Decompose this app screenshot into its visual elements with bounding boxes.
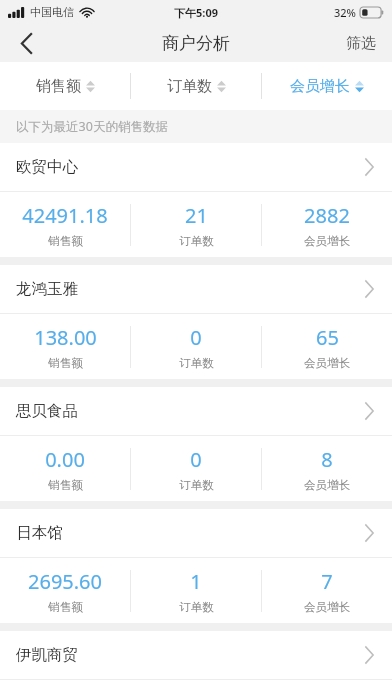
button[interactable]: Back [0,24,52,62]
staticText: 7 [321,568,333,595]
staticText: 商户分析 [162,33,230,54]
staticText: 会员增长 [304,234,350,248]
staticText: 会员增长 [304,478,350,492]
staticText: 以下为最近30天的销售数据 [16,118,168,135]
staticText: 0 [190,324,202,351]
staticText: 下午5:09 [174,5,218,20]
staticText: 会员增长 [290,77,350,96]
staticText: 思贝食品 [16,401,78,421]
staticText: 销售额 [48,600,83,614]
staticText: 销售额 [48,234,83,248]
staticText: 8 [321,446,333,473]
staticText: 欧贸中心 [16,157,78,177]
button[interactable]: 日本馆 [0,509,392,623]
button[interactable]: 欧贸中心 [0,143,392,257]
button[interactable]: 龙鸿玉雅 [0,265,392,379]
staticText: 2882 [304,202,350,229]
staticText: 会员增长 [304,356,350,370]
staticText: 中国电信 [30,5,74,19]
staticText: 订单数 [179,478,214,492]
staticText: 0.00 [45,446,85,473]
staticText: 订单数 [179,600,214,614]
staticText: 龙鸿玉雅 [16,279,78,299]
button[interactable]: 筛选 [330,24,392,62]
staticText: 42491.18 [22,202,108,229]
staticText: 0 [190,446,202,473]
staticText: 订单数 [179,234,214,248]
button[interactable]: 会员增长 [262,62,392,110]
staticText: 订单数 [167,77,212,96]
staticText: 65 [316,324,339,351]
staticText: 138.00 [34,324,97,351]
button[interactable]: 销售额 [0,62,130,110]
staticText: 会员增长 [304,600,350,614]
staticText: 伊凯商贸 [16,645,78,665]
staticText: 21 [185,202,208,229]
staticText: 销售额 [36,77,81,96]
staticText: 日本馆 [16,523,63,543]
staticText: 32% [334,5,356,20]
staticText: 销售额 [48,478,83,492]
staticText: 销售额 [48,356,83,370]
button[interactable]: 思贝食品 [0,387,392,501]
staticText: 2695.60 [28,568,102,595]
button[interactable]: 订单数 [131,62,261,110]
staticText: 订单数 [179,356,214,370]
staticText: 1 [190,568,202,595]
staticText: 筛选 [346,34,376,53]
